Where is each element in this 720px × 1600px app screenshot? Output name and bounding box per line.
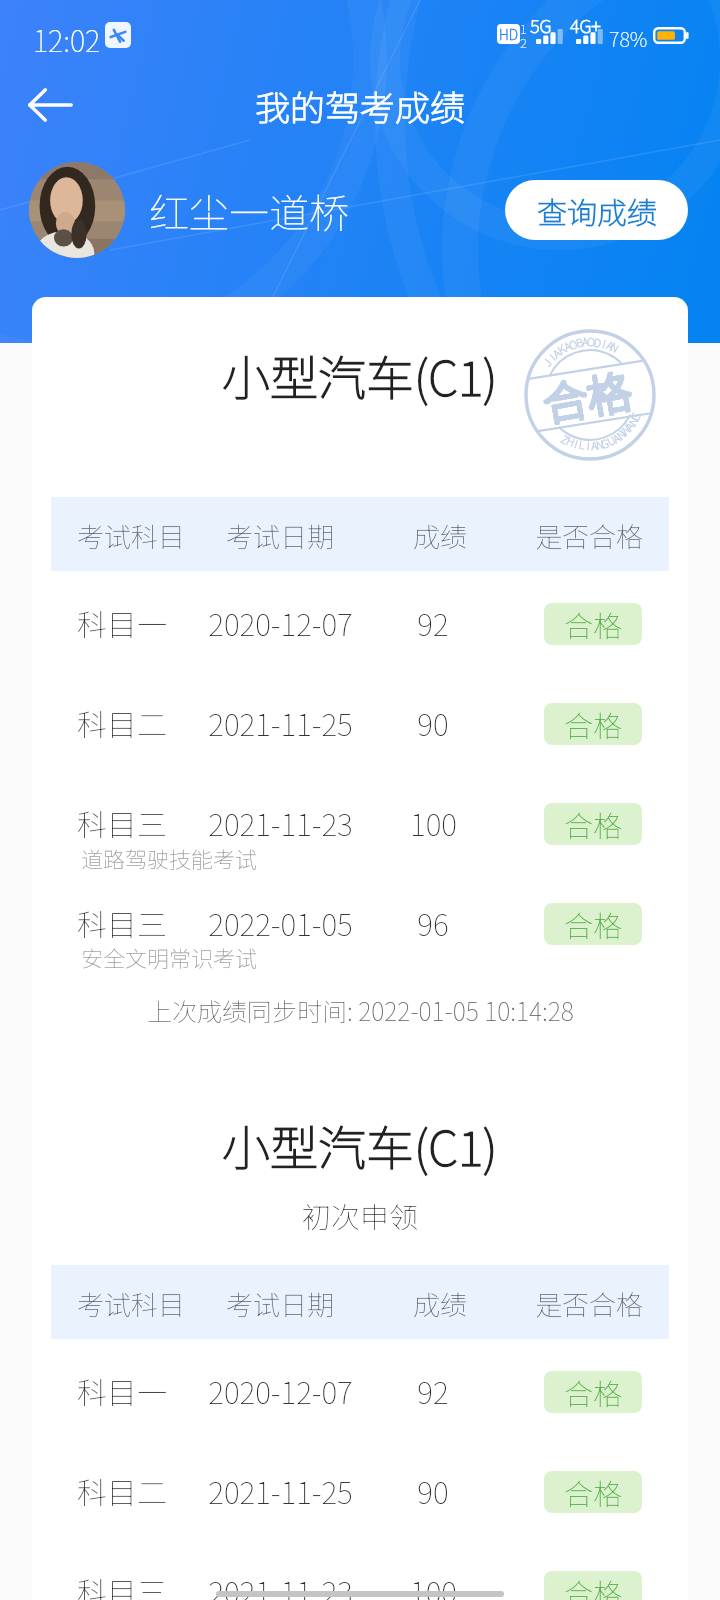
staticText: 合格 bbox=[564, 903, 623, 945]
staticText: 合格 bbox=[537, 356, 635, 434]
staticText: 初次申领 bbox=[302, 1194, 419, 1236]
staticText: A bbox=[549, 344, 564, 361]
staticText: L bbox=[578, 436, 586, 452]
staticText: 92 bbox=[417, 601, 449, 644]
staticText: 合格 bbox=[539, 355, 637, 433]
button[interactable]: 科目二 bbox=[51, 1442, 669, 1542]
staticText: 合格 bbox=[564, 1571, 623, 1600]
staticText: 合格 bbox=[538, 357, 636, 436]
staticText: 2022-01-05 bbox=[208, 901, 353, 944]
staticText: 是否合格 bbox=[535, 516, 643, 555]
staticText: 合格 bbox=[539, 357, 637, 435]
staticText: 2021-11-25 bbox=[208, 1469, 353, 1512]
staticText: 考试日期 bbox=[226, 1284, 334, 1323]
staticText: 100 bbox=[410, 1569, 457, 1600]
staticText: 查询成绩 bbox=[537, 189, 657, 232]
staticText: N bbox=[613, 425, 629, 443]
staticText: 我的驾考成绩 bbox=[255, 80, 466, 131]
staticText: 合格 bbox=[564, 1371, 623, 1413]
staticText: H bbox=[564, 432, 578, 450]
staticText: 96 bbox=[417, 901, 449, 944]
staticText: 合格 bbox=[537, 356, 635, 435]
staticText: 合格 bbox=[564, 603, 623, 645]
staticText: A bbox=[590, 437, 599, 453]
staticText: 合格 bbox=[538, 355, 636, 434]
staticText: A bbox=[561, 337, 574, 355]
staticText: 上次成绩同步时间: 2022-01-05 10:14:28 bbox=[147, 992, 574, 1028]
staticText: 2021-11-23 bbox=[208, 1569, 353, 1600]
staticText: 小型汽车(C1) bbox=[222, 340, 498, 408]
staticText: I bbox=[546, 350, 559, 363]
staticText: 2021-11-25 bbox=[208, 701, 353, 744]
staticText: 合格 bbox=[538, 356, 636, 435]
staticText: 2020-12-07 bbox=[208, 1369, 353, 1412]
staticText: 红尘一道桥 bbox=[149, 182, 349, 234]
staticText: 成绩 bbox=[413, 516, 467, 555]
staticText: N bbox=[624, 413, 642, 428]
staticText: 成绩 bbox=[413, 1284, 467, 1323]
staticText: 90 bbox=[417, 701, 449, 744]
staticText: 90 bbox=[417, 1469, 449, 1512]
button[interactable]: 科目三 bbox=[51, 874, 669, 974]
staticText: 科目三 bbox=[77, 801, 167, 844]
staticText: U bbox=[604, 431, 618, 449]
staticText: I bbox=[601, 335, 608, 351]
staticText: 5G bbox=[530, 12, 552, 38]
staticText: 2020-12-07 bbox=[208, 601, 353, 644]
staticText: 合格 bbox=[564, 803, 623, 845]
staticText: 考试日期 bbox=[226, 516, 334, 555]
staticText: 12:02 bbox=[33, 18, 101, 60]
staticText: 1 bbox=[520, 19, 527, 38]
staticText: 科目一 bbox=[77, 601, 167, 644]
staticText: 4G+ bbox=[570, 12, 601, 38]
staticText: A bbox=[581, 333, 590, 349]
button[interactable]: 查询成绩 bbox=[505, 180, 688, 240]
staticText: I bbox=[573, 435, 580, 451]
staticText: 2 bbox=[520, 33, 527, 52]
staticText: 合格 bbox=[564, 703, 623, 745]
staticText: 2021-11-23 bbox=[208, 801, 353, 844]
staticText: K bbox=[554, 340, 569, 357]
button[interactable]: 科目三 bbox=[51, 1542, 669, 1600]
staticText: 考试科目 bbox=[77, 516, 185, 555]
staticText: 78% bbox=[609, 24, 648, 53]
staticText: A bbox=[621, 418, 638, 433]
button[interactable]: 科目一 bbox=[51, 1342, 669, 1442]
staticText: Z bbox=[558, 431, 572, 448]
staticText: 100 bbox=[410, 801, 457, 844]
staticText: 合格 bbox=[537, 357, 635, 436]
staticText: N bbox=[608, 338, 622, 356]
staticText: 道路驾驶技能考试 bbox=[81, 842, 258, 874]
button[interactable]: 科目一 bbox=[51, 574, 669, 674]
staticText: 科目三 bbox=[77, 1569, 167, 1600]
button[interactable]: 科目三 bbox=[51, 774, 669, 874]
staticText: 小型汽车(C1) bbox=[222, 1110, 498, 1178]
staticText: D bbox=[593, 333, 603, 350]
staticText: A bbox=[604, 336, 617, 354]
staticText: HD bbox=[499, 24, 519, 44]
button[interactable]: 科目二 bbox=[51, 674, 669, 774]
staticText: O bbox=[587, 333, 595, 349]
button[interactable]: Back bbox=[16, 71, 84, 139]
staticText: 合格 bbox=[564, 1471, 623, 1513]
staticText: 科目三 bbox=[77, 901, 167, 944]
staticText: B bbox=[574, 333, 585, 350]
staticText: 是否合格 bbox=[535, 1284, 643, 1323]
staticText: 安全文明常识考试 bbox=[81, 941, 258, 973]
staticText: 科目一 bbox=[77, 1369, 167, 1412]
staticText: 92 bbox=[417, 1369, 449, 1412]
staticText: 科目二 bbox=[77, 701, 167, 744]
staticText: G bbox=[626, 409, 644, 423]
staticText: 考试科目 bbox=[77, 1284, 185, 1323]
staticText: A bbox=[609, 429, 624, 446]
staticText: W bbox=[616, 421, 634, 439]
staticText: 科目二 bbox=[77, 1469, 167, 1512]
staticText: J bbox=[539, 355, 555, 369]
staticText: N bbox=[594, 435, 605, 453]
staticText: O bbox=[567, 335, 579, 353]
staticText: 合格 bbox=[539, 356, 637, 434]
staticText: I bbox=[587, 437, 590, 453]
staticText: G bbox=[599, 434, 611, 452]
